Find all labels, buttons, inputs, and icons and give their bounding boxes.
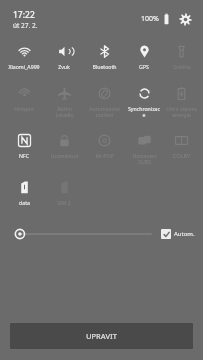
staticText: Nastavení SUBS [132, 152, 157, 166]
staticText: Bluetooth [92, 63, 117, 70]
button[interactable]: Režim Letadlo [44, 80, 84, 121]
staticText: út 27. 2. [13, 21, 38, 30]
staticText: Zvuk [58, 63, 70, 70]
button[interactable]: Uzamknout [44, 127, 84, 161]
button[interactable]: Nastavení SUBS [124, 127, 164, 168]
button[interactable]: NFC [4, 127, 44, 161]
staticText: 100% [141, 14, 159, 24]
staticText: Automatické otáčení [89, 105, 120, 119]
button[interactable]: DOLBY [164, 127, 199, 161]
button[interactable]: Zvuk [44, 38, 84, 72]
button[interactable]: GPS [124, 38, 164, 72]
button[interactable]: Settings [179, 13, 192, 26]
button[interactable]: Battery [163, 13, 170, 25]
staticText: data [19, 199, 30, 206]
staticText: Ultra úspora energie [166, 105, 197, 119]
button[interactable]: Synchronizac e [124, 80, 164, 121]
button[interactable]: Ultra úspora energie [164, 80, 199, 121]
staticText: Uzamknout [50, 152, 79, 159]
staticText: DOLBY [173, 152, 190, 159]
staticText: Svítilna [173, 63, 191, 70]
staticText: Xiaomi_A999 [8, 63, 40, 70]
staticText: UPRAVIT [86, 331, 117, 341]
staticText: Autom. [174, 230, 195, 238]
staticText: 17:22 [13, 9, 35, 21]
staticText: Hotspot [14, 105, 34, 112]
staticText: GPS [139, 63, 149, 70]
staticText: Mi-POP [95, 152, 114, 159]
button[interactable]: Automatické otáčení [84, 80, 124, 121]
button[interactable]: Hotspot [4, 80, 44, 114]
staticText: NFC [19, 152, 29, 159]
staticText: SIM 2 [57, 199, 71, 206]
staticText: Režim Letadlo [55, 105, 74, 119]
button[interactable]: Autom. [161, 229, 195, 239]
button[interactable]: Brightness [12, 224, 156, 244]
staticText: Synchronizac e [128, 105, 160, 119]
button[interactable]: Bluetooth [84, 38, 124, 72]
button[interactable]: data [4, 174, 44, 208]
button[interactable]: Xiaomi_A999 [4, 38, 44, 72]
button[interactable]: UPRAVIT [10, 323, 193, 349]
button[interactable]: Mi-POP [84, 127, 124, 161]
button[interactable]: Svítilna [164, 38, 199, 72]
